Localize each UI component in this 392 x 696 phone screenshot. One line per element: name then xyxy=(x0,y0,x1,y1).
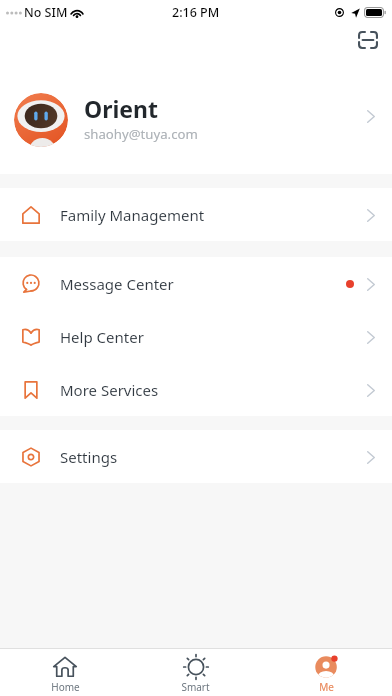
button[interactable]: Message Center xyxy=(0,257,392,310)
button[interactable]: Settings xyxy=(0,430,392,483)
staticText: Me xyxy=(319,680,334,694)
staticText: Orient xyxy=(84,93,159,124)
button[interactable]: Smart xyxy=(130,649,261,696)
button[interactable]: Family Management xyxy=(0,188,392,241)
button[interactable]: Home xyxy=(0,649,130,696)
staticText: Message Center xyxy=(60,274,174,294)
staticText: shaohy@tuya.com xyxy=(84,125,198,143)
button[interactable]: Help Center xyxy=(0,310,392,363)
staticText: No SIM xyxy=(24,4,68,21)
button[interactable]: Me xyxy=(261,649,392,696)
staticText: More Services xyxy=(60,380,159,400)
staticText: 2:16 PM xyxy=(172,4,220,21)
staticText: Home xyxy=(51,680,80,694)
button[interactable]: Orient xyxy=(0,76,392,174)
button[interactable]: Scan QR code xyxy=(349,22,387,58)
staticText: Family Management xyxy=(60,205,205,225)
button[interactable]: More Services xyxy=(0,363,392,416)
staticText: Smart xyxy=(181,680,210,694)
staticText: Help Center xyxy=(60,327,144,347)
staticText: Settings xyxy=(60,447,118,467)
